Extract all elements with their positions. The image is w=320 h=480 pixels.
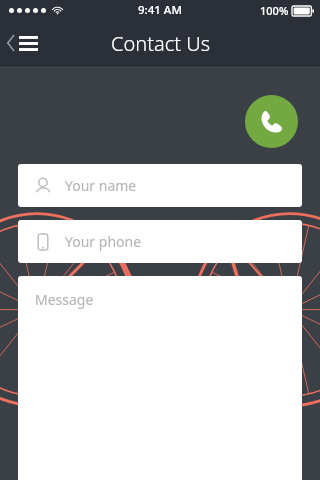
button[interactable]: Message	[18, 276, 302, 480]
staticText: Contact Us	[111, 30, 210, 57]
staticText: Your phone	[65, 232, 142, 251]
button[interactable]: Call us	[245, 95, 298, 148]
staticText: 9:41 AM	[138, 2, 182, 18]
button[interactable]: Your phone	[18, 220, 302, 263]
staticText: Message	[35, 290, 94, 309]
staticText: 100%	[260, 3, 289, 18]
button[interactable]: Open navigation menu	[0, 27, 48, 59]
button[interactable]: Your name	[18, 164, 302, 207]
staticText: Your name	[65, 176, 137, 195]
